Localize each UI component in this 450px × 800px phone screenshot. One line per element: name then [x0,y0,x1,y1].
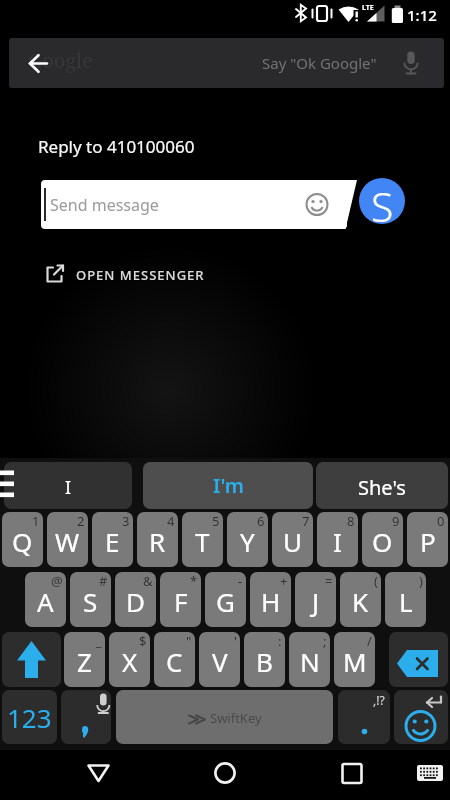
button[interactable]: C [154,632,195,687]
staticText: ( [374,572,378,590]
staticText: OPEN MESSENGER [76,266,205,284]
button[interactable]: G [205,572,246,627]
staticText: T [195,524,210,559]
button[interactable] [75,752,123,796]
staticText: X [122,644,138,679]
button[interactable] [40,260,220,290]
button[interactable]: K [340,572,381,627]
staticText: Google [28,47,94,74]
button[interactable] [389,632,448,687]
staticText: She's [358,474,406,501]
staticText: SwiftKey [210,709,262,727]
staticText: F [174,584,188,619]
button[interactable] [2,632,61,687]
staticText: = [325,572,333,590]
staticText: W [55,524,80,559]
staticText: & [143,572,153,590]
button[interactable]: Q [2,512,43,567]
staticText: 7 [302,512,310,530]
button[interactable] [410,752,450,796]
staticText: 2 [77,512,85,530]
staticText: M [343,644,367,679]
staticText: + [280,572,288,590]
button[interactable]: S [70,572,111,627]
button[interactable] [201,752,249,796]
staticText: U [283,524,303,559]
button[interactable]: M [334,632,375,687]
staticText: $ [139,632,147,650]
staticText: Send message [50,194,159,216]
staticText: P [420,524,436,559]
staticText: Y [240,524,255,559]
staticText: 5 [212,512,220,530]
staticText: D [126,584,145,619]
button[interactable]: X [109,632,150,687]
button[interactable]: ,!? [338,690,390,744]
staticText: ,!? [373,692,385,708]
button[interactable] [328,752,376,796]
button[interactable]: I'm [143,462,313,509]
staticText: - [238,572,243,590]
button[interactable] [61,690,111,744]
button[interactable]: N [289,632,330,687]
staticText: I'm [213,472,244,499]
staticText: 0 [437,512,445,530]
button[interactable]: V [199,632,240,687]
staticText: H [261,584,281,619]
staticText: 6 [257,512,265,530]
staticText: B [256,644,273,679]
button[interactable]: O [362,512,403,567]
button[interactable]: U [272,512,313,567]
staticText: / [367,632,372,650]
button[interactable]: 123 [2,690,57,744]
staticText: 4 [167,512,175,530]
button[interactable]: E [92,512,133,567]
staticText: R [149,524,166,559]
staticText: ' [234,632,237,650]
button[interactable] [394,690,448,744]
button[interactable] [9,38,444,88]
button[interactable]: Y [227,512,268,567]
button[interactable]: D [115,572,156,627]
button[interactable]: F [160,572,201,627]
button[interactable]: H [250,572,291,627]
button[interactable]: S [359,178,405,224]
staticText: @ [51,572,63,590]
button[interactable]: Z [64,632,105,687]
staticText: Q [12,524,33,559]
staticText: O [372,524,393,559]
staticText: Z [77,644,92,679]
staticText: 123 [7,700,52,735]
staticText: Reply to 410100060 [38,135,195,158]
staticText: * [190,572,198,590]
button[interactable]: B [244,632,285,687]
button[interactable]: She's [316,462,448,509]
staticText: 1 [32,512,40,530]
button[interactable]: T [182,512,223,567]
staticText: V [212,644,228,679]
button[interactable]: W [47,512,88,567]
button[interactable]: R [137,512,178,567]
staticText: 8 [347,512,355,530]
staticText: L [399,584,413,619]
staticText: N [300,644,320,679]
button[interactable]: J [295,572,336,627]
button[interactable]: L [385,572,426,627]
button[interactable]: I [4,462,132,509]
staticText: S [83,584,98,619]
button[interactable]: P [407,512,448,567]
staticText: E [105,524,120,559]
staticText: I [65,475,72,500]
staticText: # [99,572,108,590]
button[interactable]: I [317,512,358,567]
staticText: G [216,584,235,619]
staticText: Say "Ok Google" [262,53,377,73]
staticText: A [37,584,54,619]
staticText: 9 [392,512,400,530]
staticText: _ [96,632,102,650]
staticText: " [186,632,192,650]
staticText: LTE [362,3,374,13]
staticText: C [166,644,183,679]
button[interactable]: SwiftKey [116,690,333,744]
button[interactable]: A [25,572,66,627]
